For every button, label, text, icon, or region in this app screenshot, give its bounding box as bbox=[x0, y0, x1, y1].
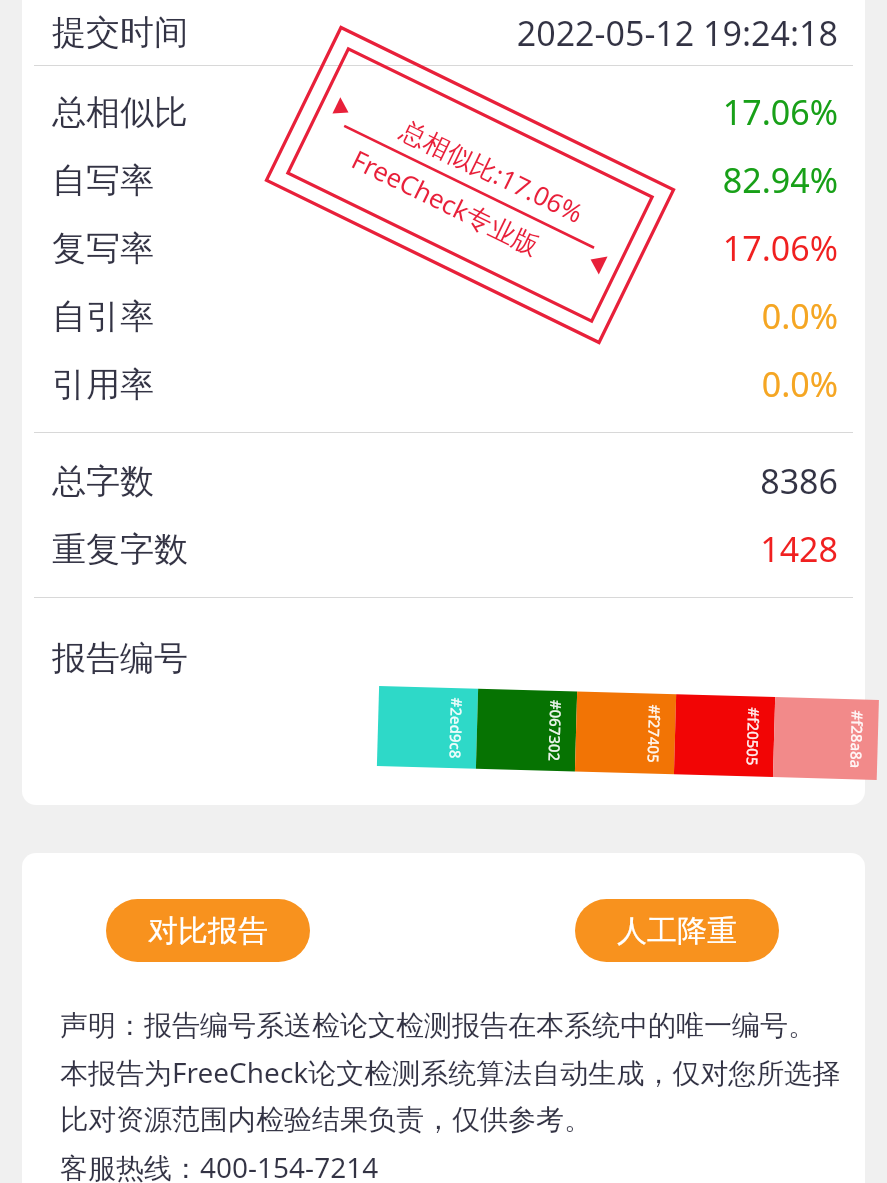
staticText: 报告编号 bbox=[52, 637, 188, 680]
button[interactable]: 人工降重 bbox=[575, 899, 779, 962]
staticText: 17.06% bbox=[722, 89, 838, 135]
button[interactable]: 报告编号 bbox=[22, 598, 865, 718]
button[interactable]: 总相似比 bbox=[22, 78, 865, 146]
staticText: 17.06% bbox=[722, 225, 838, 271]
staticText: 人工降重 bbox=[617, 912, 737, 950]
staticText: 对比报告 bbox=[148, 912, 268, 950]
staticText: 8386 bbox=[760, 458, 838, 504]
staticText: 总字数 bbox=[52, 460, 154, 503]
staticText: 客服热线：400-154-7214 bbox=[60, 1148, 379, 1183]
button[interactable]: 总字数 bbox=[22, 447, 865, 515]
staticText: 提交时间 bbox=[52, 11, 188, 54]
staticText: 总相似比 bbox=[52, 91, 188, 134]
staticText: 0.0% bbox=[761, 293, 838, 339]
staticText: 复写率 bbox=[52, 227, 154, 270]
button[interactable]: 自写率 bbox=[22, 146, 865, 214]
staticText: 声明：报告编号系送检论文检测报告在本系统中的唯一编号。本报告为FreeCheck… bbox=[60, 1008, 841, 1138]
staticText: 自引率 bbox=[52, 295, 154, 338]
staticText: 1428 bbox=[760, 526, 838, 572]
button[interactable]: 自引率 bbox=[22, 282, 865, 350]
staticText: 引用率 bbox=[52, 363, 154, 406]
staticText: 82.94% bbox=[722, 157, 838, 203]
button[interactable]: 重复字数 bbox=[22, 515, 865, 583]
button[interactable]: 提交时间 bbox=[22, 0, 865, 65]
staticText: 自写率 bbox=[52, 159, 154, 202]
button[interactable]: 复写率 bbox=[22, 214, 865, 282]
staticText: 重复字数 bbox=[52, 528, 188, 571]
button[interactable]: 引用率 bbox=[22, 350, 865, 418]
staticText: 2022-05-12 19:24:18 bbox=[516, 10, 838, 56]
button[interactable]: 对比报告 bbox=[106, 899, 310, 962]
staticText: 0.0% bbox=[761, 361, 838, 407]
